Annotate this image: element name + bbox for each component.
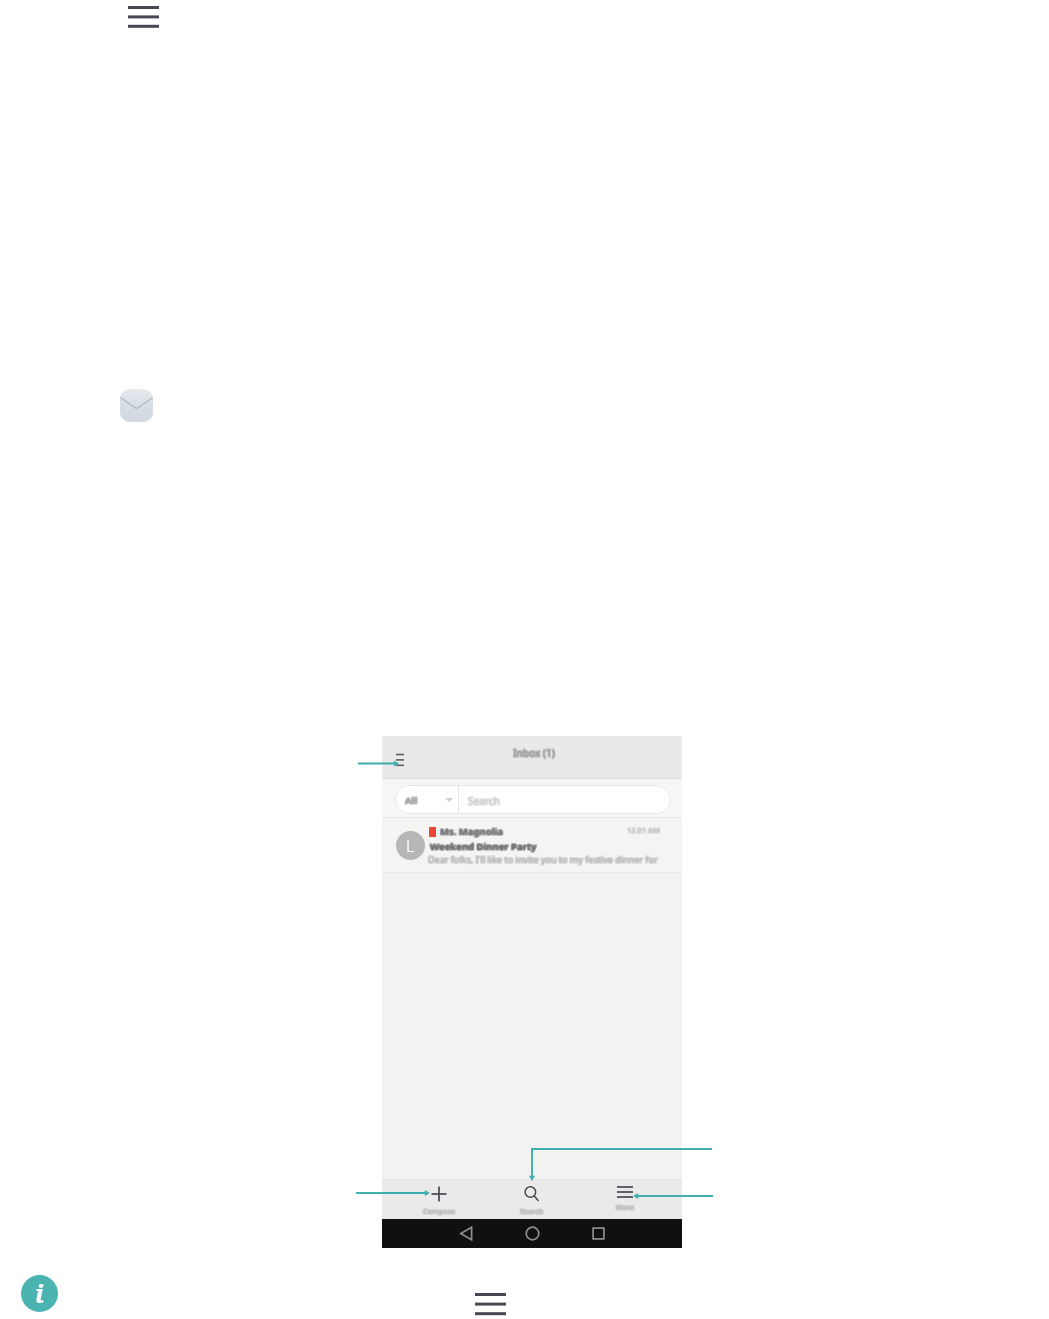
staticText: Inbox (1) xyxy=(513,747,555,761)
staticText: Ms. Magnolia xyxy=(440,825,503,838)
staticText: Dear folks, I'll like to invite you to m… xyxy=(428,852,658,864)
button[interactable]: Search xyxy=(488,1180,576,1219)
staticText: Compose xyxy=(422,1207,455,1217)
staticText: More xyxy=(616,1203,635,1213)
staticText: Inbox (1) xyxy=(514,747,556,761)
staticText: Dear folks, I'll like to invite you to m… xyxy=(429,854,659,866)
button[interactable]: Recents xyxy=(590,1219,606,1248)
staticText: Dear folks, I'll like to invite you to m… xyxy=(429,853,659,865)
staticText: Compose xyxy=(423,1207,456,1217)
staticText: Search xyxy=(520,1208,544,1218)
staticText: Search xyxy=(519,1208,543,1218)
staticText: All xyxy=(405,795,418,808)
staticText: All xyxy=(405,793,418,806)
staticText: More xyxy=(615,1203,634,1213)
button[interactable]: Home xyxy=(524,1219,540,1248)
button[interactable]: L xyxy=(382,818,682,872)
staticText: i xyxy=(35,1276,44,1310)
button[interactable]: Back xyxy=(458,1219,474,1248)
staticText: 12.01 AM xyxy=(628,825,661,835)
button[interactable]: More xyxy=(581,1180,669,1219)
staticText: Compose xyxy=(422,1208,455,1218)
staticText: Inbox (1) xyxy=(512,745,554,759)
staticText: More xyxy=(617,1203,636,1213)
button[interactable]: Compose xyxy=(395,1180,483,1219)
staticText: Ms. Magnolia xyxy=(440,826,503,839)
staticText: 12.01 AM xyxy=(627,824,660,834)
staticText: Search xyxy=(468,794,500,808)
staticText: All xyxy=(406,795,419,808)
staticText: Search xyxy=(521,1206,545,1216)
staticText: Inbox (1) xyxy=(513,745,555,759)
staticText: Search xyxy=(521,1208,545,1218)
staticText: 12.01 AM xyxy=(626,825,659,835)
staticText: Compose xyxy=(424,1206,457,1216)
staticText: All xyxy=(404,793,417,806)
staticText: All xyxy=(404,795,417,808)
staticText: Weekend Dinner Party xyxy=(429,839,536,852)
staticText: Weekend Dinner Party xyxy=(429,840,536,853)
staticText: Compose xyxy=(423,1206,456,1216)
staticText: Weekend Dinner Party xyxy=(430,840,537,853)
staticText: 12.01 AM xyxy=(627,825,660,835)
staticText: Ms. Magnolia xyxy=(439,824,502,837)
staticText: Search xyxy=(469,793,501,807)
staticText: 12.01 AM xyxy=(628,826,661,836)
staticText: Weekend Dinner Party xyxy=(431,841,538,854)
staticText: Search xyxy=(467,794,499,808)
staticText: Search xyxy=(467,793,499,807)
staticText: Ms. Magnolia xyxy=(441,826,504,839)
staticText: Search xyxy=(520,1207,544,1217)
staticText: Ms. Magnolia xyxy=(439,826,502,839)
staticText: Compose xyxy=(424,1207,457,1217)
staticText: Weekend Dinner Party xyxy=(430,841,537,854)
staticText: Search xyxy=(468,793,500,807)
button[interactable]: Navigation menu xyxy=(390,748,410,766)
staticText: Search xyxy=(469,794,501,808)
staticText: Dear folks, I'll like to invite you to m… xyxy=(428,854,658,866)
staticText: Weekend Dinner Party xyxy=(430,839,537,852)
staticText: Search xyxy=(519,1207,543,1217)
staticText: Weekend Dinner Party xyxy=(431,839,538,852)
button[interactable]: Menu xyxy=(475,1293,506,1315)
staticText: Inbox (1) xyxy=(514,746,556,760)
staticText: Compose xyxy=(423,1208,456,1218)
staticText: Weekend Dinner Party xyxy=(431,840,538,853)
staticText: Search xyxy=(467,795,499,809)
staticText: All xyxy=(406,794,419,807)
staticText: 12.01 AM xyxy=(626,824,659,834)
staticText: Search xyxy=(520,1206,544,1216)
staticText: Compose xyxy=(424,1208,457,1218)
staticText: 12.01 AM xyxy=(627,826,660,836)
staticText: Dear folks, I'll like to invite you to m… xyxy=(429,852,659,864)
staticText: Search xyxy=(468,795,500,809)
staticText: Inbox (1) xyxy=(513,746,555,760)
staticText: Dear folks, I'll like to invite you to m… xyxy=(427,854,657,866)
staticText: 12.01 AM xyxy=(626,826,659,836)
staticText: More xyxy=(616,1204,635,1214)
staticText: All xyxy=(404,794,417,807)
staticText: All xyxy=(405,794,418,807)
staticText: Inbox (1) xyxy=(512,746,554,760)
button[interactable]: All xyxy=(395,785,671,814)
staticText: Inbox (1) xyxy=(514,745,556,759)
other: Mail xyxy=(120,389,153,422)
button[interactable]: Info xyxy=(21,1275,58,1312)
staticText: Ms. Magnolia xyxy=(440,824,503,837)
staticText: Ms. Magnolia xyxy=(441,825,504,838)
staticText: 12.01 AM xyxy=(628,824,661,834)
staticText: Search xyxy=(469,795,501,809)
staticText: More xyxy=(617,1204,636,1214)
staticText: Weekend Dinner Party xyxy=(429,841,536,854)
button[interactable]: Menu xyxy=(128,6,159,28)
staticText: Compose xyxy=(422,1206,455,1216)
staticText: Search xyxy=(519,1206,543,1216)
staticText: More xyxy=(617,1202,636,1212)
staticText: Dear folks, I'll like to invite you to m… xyxy=(427,852,657,864)
staticText: Inbox (1) xyxy=(512,747,554,761)
staticText: Ms. Magnolia xyxy=(441,824,504,837)
staticText: Search xyxy=(521,1207,545,1217)
staticText: More xyxy=(615,1204,634,1214)
staticText: More xyxy=(616,1202,635,1212)
staticText: More xyxy=(615,1202,634,1212)
